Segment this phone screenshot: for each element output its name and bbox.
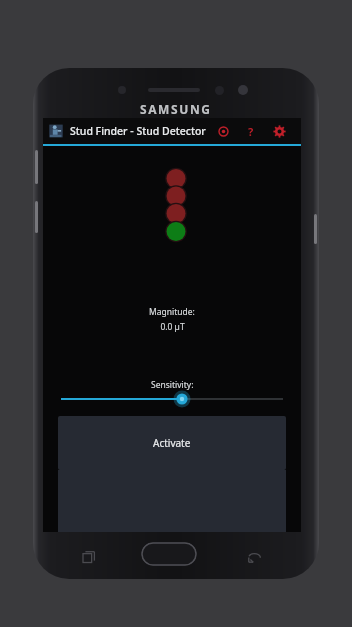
- staticText: Stud Finder - Stud Detector: [70, 124, 206, 138]
- button[interactable]: Home: [141, 542, 197, 566]
- button[interactable]: Calibrate: [213, 121, 233, 141]
- staticText: 0.0 µT: [160, 321, 185, 333]
- staticText: Magnitude:: [149, 306, 195, 318]
- staticText: Activate: [153, 436, 191, 450]
- button[interactable]: Help: [241, 121, 261, 141]
- button[interactable]: Settings: [269, 121, 289, 141]
- staticText: ?: [248, 124, 254, 139]
- button[interactable]: Back: [243, 546, 265, 568]
- button[interactable]: Activate: [58, 416, 286, 470]
- staticText: SAMSUNG: [140, 101, 212, 117]
- button[interactable]: Sensitivity slider: [55, 388, 289, 410]
- button[interactable]: Recents: [78, 546, 100, 568]
- staticText: Sensitivity:: [151, 379, 194, 391]
